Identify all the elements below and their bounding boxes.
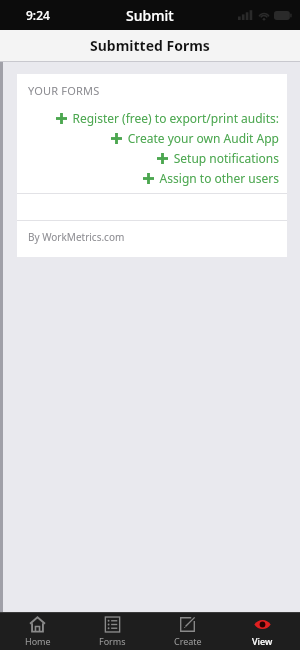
staticText: Submitted Forms <box>90 36 210 55</box>
staticText: 9:24 <box>26 7 50 23</box>
staticText: Home <box>25 635 51 647</box>
staticText: Create <box>174 635 202 647</box>
staticText: By WorkMetrics.com <box>28 230 125 244</box>
button[interactable]: Create your own Audit App <box>17 128 287 148</box>
staticText: YOUR FORMS <box>28 83 100 98</box>
staticText: Forms <box>99 635 126 647</box>
button[interactable]: Home <box>0 613 75 650</box>
button[interactable]: Create <box>150 613 225 650</box>
button[interactable]: Forms <box>75 613 150 650</box>
staticText: Submit <box>126 6 174 25</box>
button[interactable]: Setup notifications <box>17 148 287 168</box>
staticText: Create your own Audit App <box>127 130 279 146</box>
staticText: Assign to other users <box>159 170 279 186</box>
button[interactable]: View <box>225 613 300 650</box>
staticText: View <box>252 635 273 647</box>
button[interactable]: Register (free) to export/print audits: <box>17 108 287 128</box>
button[interactable]: Assign to other users <box>17 168 287 188</box>
staticText: Register (free) to export/print audits: <box>72 110 279 126</box>
staticText: Setup notifications <box>173 150 279 166</box>
